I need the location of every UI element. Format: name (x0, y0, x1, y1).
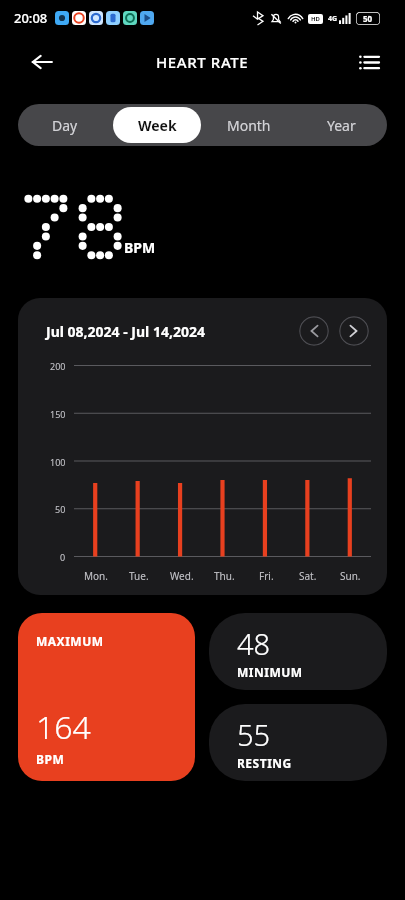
staticText: HD (311, 15, 320, 23)
staticText: 164 (36, 705, 91, 749)
button[interactable]: Back (20, 40, 64, 84)
staticText: 4G (328, 14, 338, 24)
staticText: Sun. (340, 569, 361, 583)
staticText: BPM (124, 238, 156, 257)
staticText: 150 (50, 408, 66, 419)
staticText: 50 (55, 503, 66, 514)
button[interactable]: Menu (347, 40, 391, 84)
staticText: Week (138, 116, 177, 135)
button[interactable]: Previous week (299, 316, 329, 346)
button[interactable]: 55 (209, 704, 387, 781)
staticText: 200 (50, 360, 66, 371)
staticText: HEART RATE (156, 52, 249, 72)
staticText: Day (52, 116, 78, 135)
staticText: Wed. (170, 569, 194, 583)
staticText: Tue. (129, 569, 149, 583)
staticText: RESTING (237, 755, 292, 771)
staticText: Mon. (84, 569, 108, 583)
staticText: 50 (363, 13, 373, 24)
button[interactable]: Day (20, 107, 109, 143)
staticText: 55 (237, 715, 271, 754)
staticText: Thu. (214, 569, 235, 583)
staticText: 48 (237, 624, 271, 663)
staticText: Fri. (259, 569, 274, 583)
staticText: MAXIMUM (36, 633, 104, 649)
staticText: Jul 08,2024 - Jul 14,2024 (46, 322, 205, 341)
button[interactable]: Year (297, 107, 385, 143)
staticText: Year (327, 116, 356, 135)
staticText: Sat. (299, 569, 317, 583)
button[interactable]: Month (205, 107, 293, 143)
button[interactable]: 48 (209, 613, 387, 690)
staticText: 0 (60, 551, 66, 562)
staticText: MINIMUM (237, 664, 303, 680)
staticText: Month (227, 116, 271, 135)
button[interactable]: Week (113, 107, 201, 143)
staticText: BPM (36, 751, 65, 767)
staticText: 100 (50, 456, 66, 467)
button[interactable]: MAXIMUM (18, 613, 195, 781)
staticText: 20:08 (14, 9, 48, 27)
button[interactable]: Next week (339, 316, 369, 346)
